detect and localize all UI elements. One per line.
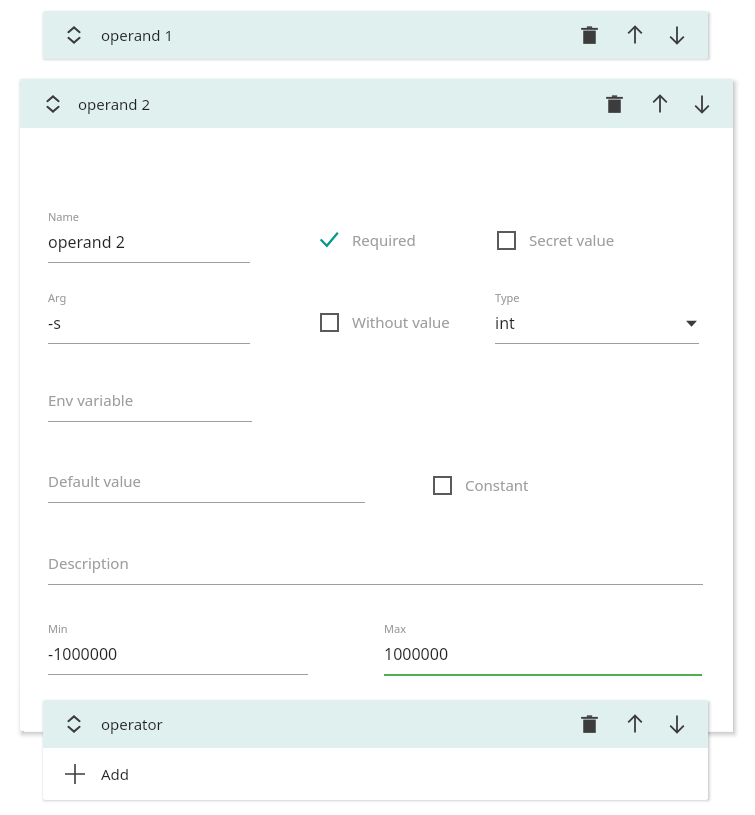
staticText: Without value: [352, 312, 450, 332]
button[interactable]: Reorder: [61, 22, 87, 48]
button[interactable]: Move up: [643, 87, 677, 121]
staticText: Add: [101, 764, 130, 784]
button[interactable]: Required: [318, 229, 416, 251]
button[interactable]: Default value: [48, 471, 365, 503]
staticText: Type: [495, 290, 520, 305]
button[interactable]: Delete: [572, 18, 606, 52]
button[interactable]: Reorder: [43, 700, 708, 748]
button[interactable]: Reorder: [20, 79, 733, 128]
staticText: Required: [352, 230, 416, 250]
staticText: Arg: [48, 290, 67, 305]
staticText: operand 1: [101, 25, 174, 45]
staticText: -1000000: [48, 643, 118, 665]
staticText: Constant: [465, 475, 529, 495]
button[interactable]: Reorder: [43, 11, 708, 59]
button[interactable]: Add: [43, 748, 708, 800]
button[interactable]: Move up: [618, 707, 652, 741]
button[interactable]: Reorder: [40, 91, 66, 117]
staticText: 1000000: [384, 643, 449, 665]
button[interactable]: Secret value: [495, 229, 615, 251]
staticText: operand 2: [78, 94, 151, 114]
staticText: Max: [384, 621, 406, 636]
staticText: Default value: [48, 471, 142, 491]
staticText: int: [495, 312, 515, 334]
staticText: -s: [48, 312, 61, 334]
button[interactable]: Constant: [431, 474, 529, 496]
button[interactable]: Max: [384, 621, 702, 676]
button[interactable]: Name: [48, 209, 250, 263]
button[interactable]: Min: [48, 621, 308, 675]
staticText: Min: [48, 621, 68, 636]
staticText: Secret value: [529, 230, 615, 250]
button[interactable]: Arg: [48, 290, 250, 344]
button[interactable]: Env variable: [48, 390, 252, 422]
button[interactable]: Description: [48, 553, 703, 585]
button[interactable]: Without value: [318, 311, 450, 333]
button[interactable]: Move up: [618, 18, 652, 52]
button[interactable]: Move down: [660, 707, 694, 741]
staticText: Name: [48, 209, 80, 224]
button[interactable]: Delete: [597, 87, 631, 121]
button[interactable]: Reorder: [61, 711, 87, 737]
staticText: operand 2: [48, 231, 125, 253]
button[interactable]: Move down: [660, 18, 694, 52]
staticText: operator: [101, 714, 163, 734]
staticText: Env variable: [48, 390, 134, 410]
button[interactable]: Delete: [572, 707, 606, 741]
button[interactable]: Type: [495, 290, 699, 344]
button[interactable]: Move down: [685, 87, 719, 121]
staticText: Description: [48, 553, 129, 573]
